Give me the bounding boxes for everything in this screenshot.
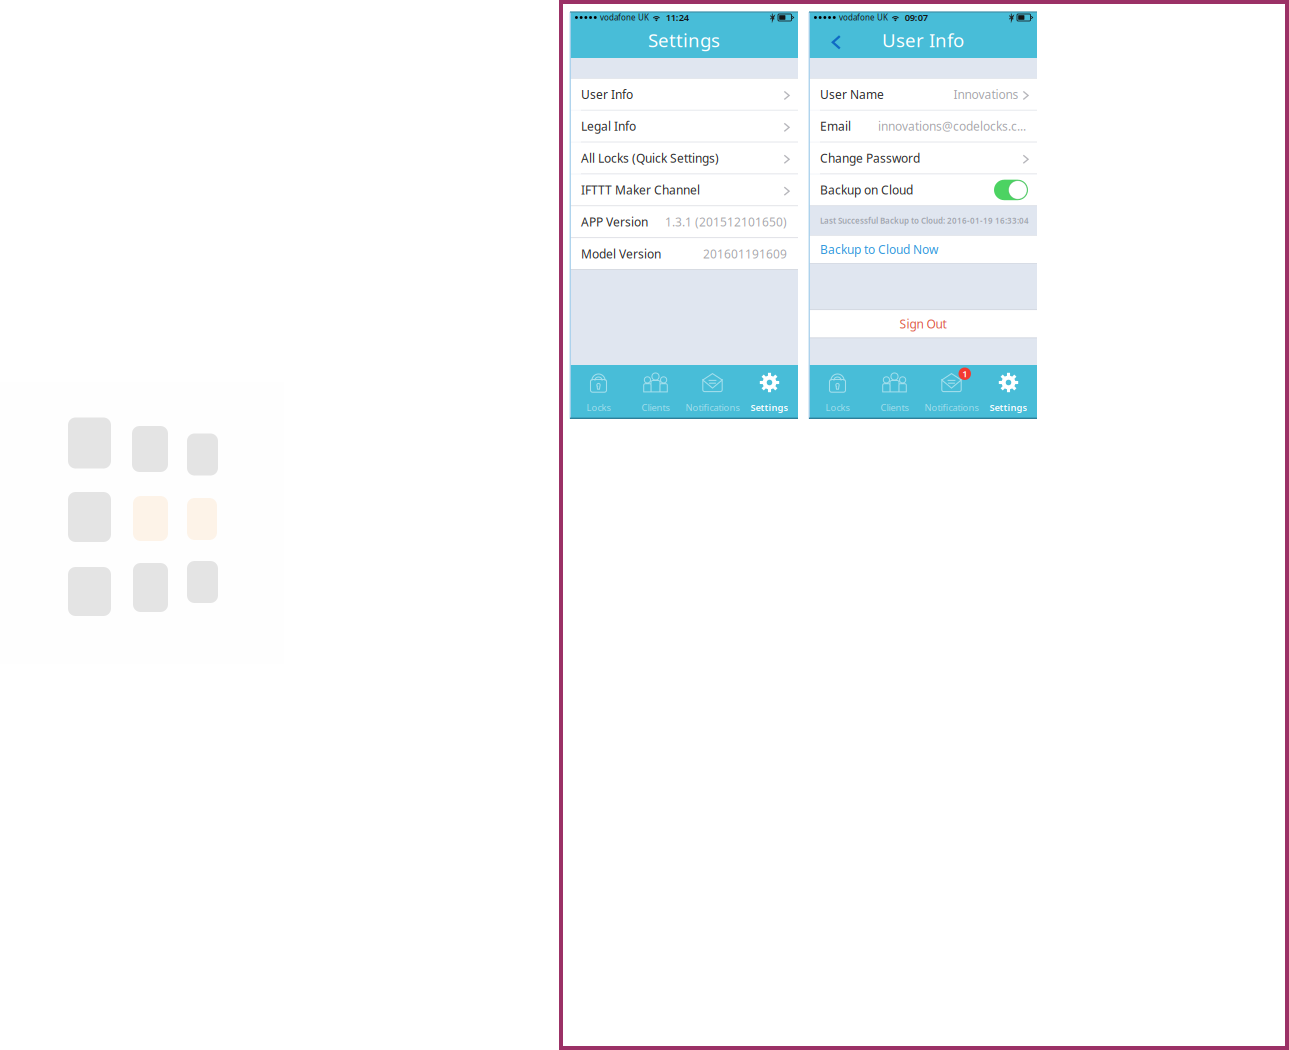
button[interactable]: Backup on Cloud xyxy=(809,174,1037,206)
staticText: Legal Info xyxy=(581,118,636,134)
staticText: Last Successful Backup to Cloud: 2016-01… xyxy=(820,215,1029,226)
button[interactable]: Legal Info xyxy=(570,110,798,142)
staticText: 09:07 xyxy=(905,11,928,24)
button[interactable]: Backup to Cloud Now xyxy=(809,236,1037,263)
button[interactable]: Clients xyxy=(627,365,684,419)
staticText: 11:24 xyxy=(666,11,689,24)
staticText: Change Password xyxy=(820,150,920,166)
button[interactable]: All Locks (Quick Settings) xyxy=(570,142,798,174)
button[interactable]: APP Version xyxy=(570,206,798,237)
staticText: Email xyxy=(820,118,851,134)
button[interactable]: Settings xyxy=(980,365,1037,419)
staticText: vodafone UK xyxy=(600,12,649,23)
staticText: Settings xyxy=(648,27,720,52)
button[interactable]: Clients xyxy=(866,365,923,419)
staticText: Locks xyxy=(586,401,610,413)
staticText: Model Version xyxy=(581,246,661,262)
staticText: innovations@codelocks.c... xyxy=(878,118,1026,134)
staticText: 1 xyxy=(962,368,967,380)
staticText: 201601191609 xyxy=(703,246,787,262)
staticText: Locks xyxy=(825,401,849,413)
staticText: Notifications xyxy=(924,401,978,413)
staticText: Innovations xyxy=(954,86,1019,102)
button[interactable]: User Name xyxy=(809,79,1037,110)
staticText: Backup on Cloud xyxy=(820,182,913,198)
staticText: User Info xyxy=(882,27,964,52)
button[interactable]: Locks xyxy=(570,365,627,419)
staticText: Settings xyxy=(989,401,1027,413)
staticText: vodafone UK xyxy=(839,12,888,23)
staticText: All Locks (Quick Settings) xyxy=(581,150,719,166)
staticText: Clients xyxy=(641,401,669,413)
button[interactable]: Back xyxy=(809,23,850,58)
staticText: Backup to Cloud Now xyxy=(820,241,938,257)
button[interactable]: Model Version xyxy=(570,238,798,269)
staticText: User Info xyxy=(581,86,633,102)
button[interactable]: Notifications xyxy=(684,365,741,419)
staticText: Clients xyxy=(880,401,908,413)
button[interactable]: Locks xyxy=(809,365,866,419)
button[interactable]: 1 xyxy=(923,365,980,419)
staticText: User Name xyxy=(820,86,884,102)
staticText: Settings xyxy=(750,401,788,413)
staticText: APP Version xyxy=(581,214,648,230)
button[interactable]: Change Password xyxy=(809,142,1037,174)
button[interactable]: Sign Out xyxy=(809,310,1037,338)
staticText: IFTTT Maker Channel xyxy=(581,182,700,198)
staticText: Sign Out xyxy=(899,316,946,332)
staticText: Notifications xyxy=(685,401,739,413)
button[interactable]: User Info xyxy=(570,79,798,110)
button[interactable]: IFTTT Maker Channel xyxy=(570,174,798,206)
staticText: 1.3.1 (201512101650) xyxy=(665,214,787,230)
button[interactable]: Settings xyxy=(741,365,798,419)
